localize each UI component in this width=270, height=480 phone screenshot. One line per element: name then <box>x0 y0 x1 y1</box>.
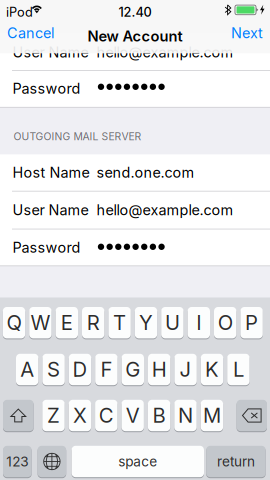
staticText: T <box>113 310 126 335</box>
button[interactable]: return <box>206 445 266 478</box>
button[interactable]: O <box>214 306 236 339</box>
button[interactable]: T <box>108 306 131 339</box>
button[interactable]: Z <box>42 399 65 432</box>
button[interactable]: Delete <box>237 399 267 432</box>
staticText: I <box>196 310 201 335</box>
button[interactable]: J <box>174 353 197 386</box>
button[interactable]: Q <box>3 306 25 339</box>
staticText: G <box>125 357 140 382</box>
staticText: J <box>180 357 192 382</box>
staticText: Next <box>231 24 263 42</box>
staticText: Password <box>13 239 81 256</box>
button[interactable]: K <box>201 353 223 386</box>
staticText: Q <box>6 310 21 335</box>
button[interactable]: Y <box>135 306 157 339</box>
staticText: O <box>218 310 233 335</box>
staticText: A <box>20 357 34 382</box>
staticText: Host Name <box>13 164 90 181</box>
staticText: X <box>73 403 87 428</box>
button[interactable]: 123 <box>3 445 32 478</box>
staticText: U <box>165 310 180 335</box>
button[interactable]: R <box>82 306 104 339</box>
staticText: User Name <box>13 201 89 219</box>
staticText: Z <box>47 403 60 428</box>
button[interactable]: L <box>227 353 250 386</box>
staticText: send.one.com <box>97 164 195 181</box>
staticText: V <box>126 403 140 428</box>
staticText: L <box>233 357 244 382</box>
staticText: E <box>61 310 73 335</box>
staticText: B <box>153 403 166 428</box>
staticText: hello@example.com <box>97 44 234 61</box>
button[interactable]: X <box>69 399 91 432</box>
staticText: W <box>30 310 50 335</box>
staticText: D <box>72 357 87 382</box>
button[interactable]: C <box>95 399 117 432</box>
button[interactable]: Next <box>225 22 263 44</box>
button[interactable]: B <box>148 399 170 432</box>
button[interactable]: W <box>29 306 52 339</box>
button[interactable]: N <box>174 399 197 432</box>
staticText: Password <box>13 80 81 97</box>
staticText: OUTGOING MAIL SERVER <box>14 130 142 143</box>
staticText: 123 <box>6 453 28 470</box>
button[interactable]: H <box>148 353 170 386</box>
button[interactable]: Shift <box>3 399 34 432</box>
staticText: iPod <box>6 4 33 20</box>
staticText: space <box>118 453 157 470</box>
staticText: R <box>87 310 100 335</box>
button[interactable]: I <box>188 306 210 339</box>
staticText: N <box>178 403 193 428</box>
staticText: Y <box>139 310 153 335</box>
staticText: M <box>203 403 221 428</box>
button[interactable]: F <box>95 353 118 386</box>
staticText: 12.40 <box>118 4 151 20</box>
button[interactable]: E <box>56 306 78 339</box>
button[interactable]: A <box>16 353 38 386</box>
staticText: C <box>99 403 114 428</box>
staticText: K <box>205 357 219 382</box>
button[interactable]: V <box>121 399 144 432</box>
staticText: return <box>217 453 255 470</box>
button[interactable]: M <box>201 399 223 432</box>
staticText: F <box>100 357 112 382</box>
staticText: New Account <box>87 27 182 45</box>
button[interactable]: G <box>122 353 144 386</box>
button[interactable]: Next keyboard <box>38 445 66 478</box>
button[interactable]: Cancel <box>7 22 59 44</box>
button[interactable]: space <box>72 445 204 478</box>
staticText: User Name <box>13 44 89 61</box>
button[interactable]: P <box>240 306 263 339</box>
staticText: P <box>245 310 258 335</box>
staticText: S <box>47 357 60 382</box>
button[interactable]: S <box>42 353 65 386</box>
button[interactable]: U <box>161 306 184 339</box>
button[interactable]: D <box>69 353 91 386</box>
staticText: H <box>152 357 167 382</box>
staticText: hello@example.com <box>97 201 234 219</box>
staticText: Cancel <box>7 24 54 42</box>
